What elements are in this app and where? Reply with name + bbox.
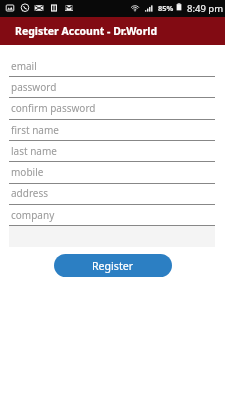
staticText: mobile — [11, 165, 44, 179]
staticText: last name — [11, 144, 57, 158]
staticText: email — [11, 59, 37, 73]
button[interactable]: email — [9, 56, 215, 77]
button[interactable]: address — [9, 183, 215, 204]
button[interactable]: first name — [9, 120, 215, 141]
staticText: first name — [11, 123, 59, 137]
button[interactable]: Register — [54, 254, 172, 277]
button[interactable]: mobile — [9, 162, 215, 183]
button[interactable]: last name — [9, 141, 215, 162]
button[interactable]: company — [9, 205, 215, 226]
staticText: Register Account - Dr.World — [15, 24, 158, 38]
staticText: password — [11, 80, 57, 94]
staticText: 85% — [158, 3, 174, 13]
button[interactable]: password — [9, 77, 215, 98]
button[interactable]: confirm password — [9, 98, 215, 119]
staticText: address — [11, 186, 49, 200]
staticText: Register — [92, 259, 134, 273]
staticText: confirm password — [11, 101, 96, 115]
staticText: company — [11, 208, 55, 222]
staticText: 8:49 pm — [187, 2, 224, 15]
